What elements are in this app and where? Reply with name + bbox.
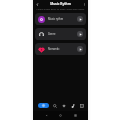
button[interactable]: Music rythm (35, 13, 86, 25)
button[interactable]: Favourites (60, 102, 68, 110)
button[interactable]: Home (38, 103, 49, 108)
button[interactable]: Search (51, 102, 59, 110)
button[interactable]: Play (77, 46, 83, 52)
button[interactable]: Playlists (69, 102, 77, 110)
staticText: Music Rythm (50, 2, 71, 6)
button[interactable]: Play (77, 16, 83, 22)
staticText: Genre (48, 32, 56, 36)
staticText: Music rythm (48, 17, 64, 21)
button[interactable]: More options (82, 2, 87, 7)
button[interactable]: Library (78, 102, 86, 110)
button[interactable]: Back (35, 2, 40, 7)
button[interactable]: Genre (35, 28, 86, 40)
button[interactable]: Romantic (35, 43, 86, 55)
staticText: Lorem ipsum dolor sit amet consectetur a… (34, 8, 87, 11)
button[interactable]: Play (77, 31, 83, 37)
staticText: Romantic (48, 47, 60, 51)
